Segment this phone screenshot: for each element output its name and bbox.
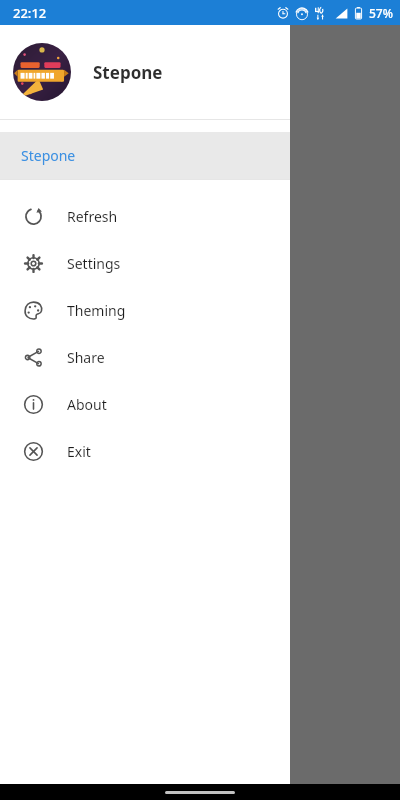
button[interactable]: Settings bbox=[0, 240, 290, 287]
staticText: Stepone bbox=[93, 61, 163, 84]
button[interactable]: Share bbox=[0, 334, 290, 381]
staticText: 57% bbox=[369, 5, 393, 21]
staticText: Settings bbox=[67, 254, 121, 273]
staticText: 22:12 bbox=[13, 4, 47, 22]
staticText: Share bbox=[67, 348, 105, 367]
staticText: Theming bbox=[67, 301, 126, 320]
staticText: Stepone bbox=[21, 146, 76, 165]
button[interactable]: Refresh bbox=[0, 193, 290, 240]
button[interactable]: About bbox=[0, 381, 290, 428]
staticText: Exit bbox=[67, 442, 91, 461]
button[interactable]: Theming bbox=[0, 287, 290, 334]
staticText: Refresh bbox=[67, 207, 118, 226]
staticText: About bbox=[67, 395, 107, 414]
button[interactable]: Exit bbox=[0, 428, 290, 475]
button[interactable]: Stepone bbox=[0, 132, 290, 179]
button[interactable]: Stepone bbox=[0, 25, 290, 119]
